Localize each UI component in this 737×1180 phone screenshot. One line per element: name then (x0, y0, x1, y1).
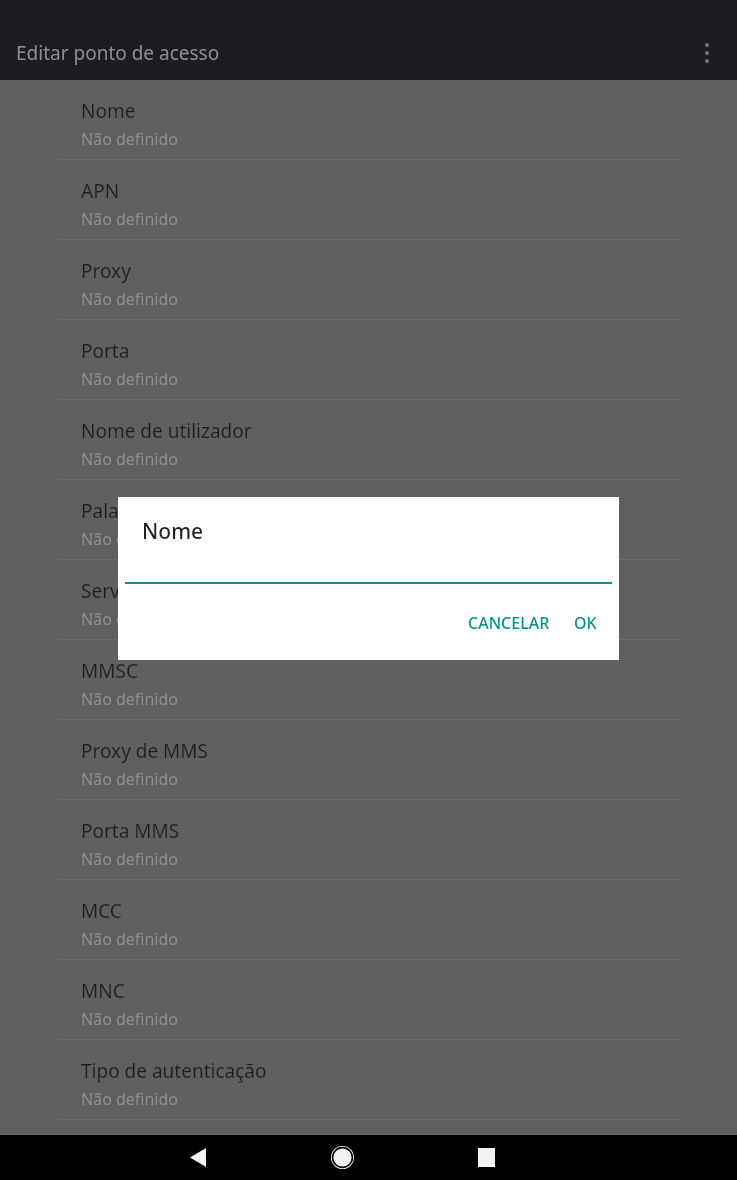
button[interactable]: Início (314, 1135, 370, 1180)
button[interactable]: Palavra-passe (0, 480, 737, 560)
staticText: Tipo de autenticação (81, 1058, 267, 1084)
button[interactable]: Proxy (0, 240, 737, 320)
staticText: Não definido (81, 928, 179, 950)
staticText: Porta MMS (81, 818, 180, 844)
staticText: Não definido (81, 528, 179, 550)
staticText: Não definido (81, 368, 179, 390)
button[interactable]: MCC (0, 880, 737, 960)
staticText: Não definido (81, 448, 179, 470)
button[interactable]: CANCELAR (460, 606, 558, 640)
button[interactable]: Tipo de autenticação (0, 1040, 737, 1120)
button[interactable]: Anterior (170, 1135, 226, 1180)
staticText: Proxy de MMS (81, 738, 208, 764)
staticText: Proxy (81, 258, 131, 284)
staticText: MNC (81, 978, 125, 1004)
staticText: APN (81, 178, 120, 204)
staticText: Não definido (81, 768, 179, 790)
staticText: MCC (81, 898, 122, 924)
staticText: OK (574, 612, 597, 634)
staticText: Não definido (81, 128, 179, 150)
button[interactable]: Porta MMS (0, 800, 737, 880)
staticText: MMSC (81, 658, 138, 684)
staticText: Não definido (81, 608, 179, 630)
staticText: Não definido (81, 848, 179, 870)
staticText: Porta (81, 338, 130, 364)
button[interactable]: Porta (0, 320, 737, 400)
button[interactable]: Nome (0, 80, 737, 160)
staticText: Não definido (81, 688, 179, 710)
button[interactable]: APN (0, 160, 737, 240)
staticText: Editar ponto de acesso (16, 40, 220, 66)
staticText: Servidor (81, 578, 156, 604)
staticText: Não definido (81, 1088, 179, 1110)
staticText: Não definido (81, 288, 179, 310)
button[interactable]: MMSC (0, 640, 737, 720)
staticText: Não definido (81, 1008, 179, 1030)
button[interactable]: MNC (0, 960, 737, 1040)
button[interactable]: Mais opções (683, 29, 731, 77)
button[interactable]: OK (566, 606, 605, 640)
button[interactable]: Proxy de MMS (0, 720, 737, 800)
staticText: Nome (142, 517, 204, 546)
staticText: Palavra-passe (81, 498, 204, 524)
staticText: Nome (81, 98, 136, 124)
button[interactable]: Servidor (0, 560, 737, 640)
staticText: Nome de utilizador (81, 418, 252, 444)
button[interactable]: Nome de utilizador (0, 400, 737, 480)
staticText: Não definido (81, 208, 179, 230)
staticText: CANCELAR (468, 612, 550, 634)
button[interactable]: Vista geral (458, 1135, 514, 1180)
button[interactable]: Tipo de APN (0, 1120, 737, 1180)
